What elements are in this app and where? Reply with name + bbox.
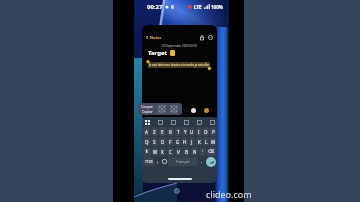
button[interactable]: Keyboard tool 0	[144, 119, 150, 125]
staticText: LTE	[194, 4, 202, 10]
button[interactable]: C	[167, 147, 174, 156]
staticText: H	[183, 139, 187, 145]
button[interactable]: Q	[143, 137, 150, 146]
staticText: W	[153, 149, 158, 155]
button[interactable]: D	[159, 137, 166, 146]
button[interactable]: Keyboard tool 4	[196, 119, 202, 125]
button[interactable]: F	[167, 137, 174, 146]
button[interactable]: A	[143, 127, 150, 136]
button[interactable]: Translate	[156, 103, 168, 115]
button[interactable]: Select all	[168, 103, 180, 115]
button[interactable]: Keyboard tool 2	[170, 119, 176, 125]
staticText: Q	[145, 139, 149, 145]
button[interactable]: Z	[151, 127, 158, 136]
staticText: ⌫	[208, 149, 215, 154]
button[interactable]: K	[196, 137, 202, 146]
button[interactable]: Keyboard tool 5	[209, 119, 215, 125]
staticText: P	[212, 129, 215, 135]
button[interactable]: Y	[182, 127, 188, 136]
button[interactable]: X	[159, 147, 166, 156]
staticText: F	[169, 139, 172, 145]
staticText: L	[205, 139, 208, 145]
staticText: 00:27	[147, 3, 163, 11]
staticText: ,	[157, 158, 159, 165]
staticText: Je vais faire mes devoirs et ensuite je …	[149, 63, 210, 67]
staticText: M	[211, 139, 216, 145]
button[interactable]: Share	[198, 34, 205, 41]
staticText: Z	[153, 129, 156, 135]
button[interactable]: '	[199, 147, 206, 156]
button[interactable]: E	[159, 127, 166, 136]
staticText: Y	[184, 129, 187, 135]
button[interactable]: I	[196, 127, 202, 136]
button[interactable]: H	[182, 137, 188, 146]
button[interactable]: Notes	[145, 35, 164, 40]
button[interactable]: Enter	[205, 156, 216, 167]
button[interactable]: M	[210, 137, 216, 146]
button[interactable]: W	[152, 147, 158, 156]
staticText: T	[177, 129, 180, 135]
staticText: X	[161, 149, 164, 155]
staticText: '	[202, 149, 204, 155]
staticText: B	[185, 149, 188, 155]
button[interactable]: ?123	[143, 157, 154, 166]
staticText: Target	[148, 49, 168, 57]
staticText: Notes	[150, 35, 162, 40]
staticText: ⬆	[145, 149, 149, 154]
button[interactable]: S	[151, 137, 158, 146]
button[interactable]: Couper	[138, 103, 156, 115]
button[interactable]: Keyboard tool 1	[157, 119, 163, 125]
staticText: C	[169, 149, 172, 155]
staticText: .	[201, 158, 203, 165]
staticText: O	[204, 129, 208, 135]
button[interactable]: Emoji suggestion 1	[191, 108, 196, 113]
button[interactable]: O	[203, 127, 209, 136]
button[interactable]: L	[203, 137, 209, 146]
button[interactable]: More options	[207, 34, 214, 41]
staticText: U	[190, 129, 194, 135]
button[interactable]: Emoji	[161, 157, 167, 166]
staticText: Couper	[141, 104, 154, 109]
staticText: J	[191, 139, 193, 145]
button[interactable]: Period	[199, 157, 204, 166]
staticText: Copier	[142, 109, 153, 114]
button[interactable]: G	[175, 137, 181, 146]
staticText: E	[161, 129, 164, 135]
button[interactable]: ⬆	[143, 147, 151, 156]
button[interactable]: B	[183, 147, 190, 156]
staticText: A	[145, 129, 148, 135]
staticText: G	[176, 139, 180, 145]
staticText: 100%	[211, 4, 223, 10]
button[interactable]: Emoji suggestion 2	[204, 108, 209, 113]
button[interactable]: U	[189, 127, 195, 136]
button[interactable]: ⌫	[207, 147, 216, 156]
staticText: K	[198, 139, 201, 145]
button[interactable]: Français	[168, 157, 198, 166]
button[interactable]: R	[167, 127, 174, 136]
staticText: V	[177, 149, 180, 155]
staticText: I	[198, 129, 200, 135]
button[interactable]: T	[175, 127, 181, 136]
button[interactable]: Comma	[155, 157, 160, 166]
button[interactable]: J	[189, 137, 195, 146]
staticText: clideo.com	[206, 188, 252, 200]
staticText: 03 September 2025 04:10	[142, 44, 217, 48]
staticText: R	[169, 129, 172, 135]
button[interactable]: V	[175, 147, 182, 156]
staticText: ?123	[145, 159, 153, 164]
staticText: N	[193, 149, 197, 155]
staticText: Français	[176, 159, 190, 164]
staticText: D	[161, 139, 165, 145]
button[interactable]: Keyboard tool 3	[183, 119, 189, 125]
button[interactable]: P	[210, 127, 216, 136]
button[interactable]: N	[191, 147, 198, 156]
staticText: S	[153, 139, 156, 145]
